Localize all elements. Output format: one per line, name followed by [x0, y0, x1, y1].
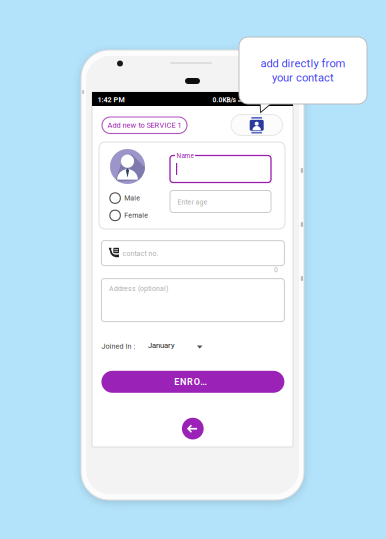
button[interactable]: Back [182, 418, 204, 439]
staticText: add directly from [260, 57, 345, 70]
staticText: 1:42 PM [97, 95, 124, 104]
staticText: 0.0KB/s [212, 96, 235, 104]
staticText: Male [124, 194, 140, 202]
staticText: January [148, 341, 175, 350]
staticText: Joined In : [101, 342, 135, 350]
button[interactable]: ENROLL [101, 371, 284, 393]
staticText: ENROLL [174, 376, 212, 387]
staticText: Enter age [177, 198, 207, 206]
button[interactable]: Female [110, 210, 154, 221]
button[interactable]: Male [110, 193, 154, 204]
staticText: Name [176, 152, 193, 159]
button[interactable]: Add directly from your contacts [231, 114, 282, 135]
button[interactable]: January [148, 341, 214, 353]
staticText: 0 [274, 266, 278, 274]
button[interactable]: Add new to SERVICE 1 [102, 117, 187, 133]
staticText: Add new to SERVICE 1 [107, 121, 181, 130]
staticText: your contact [272, 71, 334, 84]
staticText: Address (optional) [109, 285, 168, 293]
staticText: contact no. [122, 250, 158, 258]
staticText: Female [124, 211, 148, 219]
